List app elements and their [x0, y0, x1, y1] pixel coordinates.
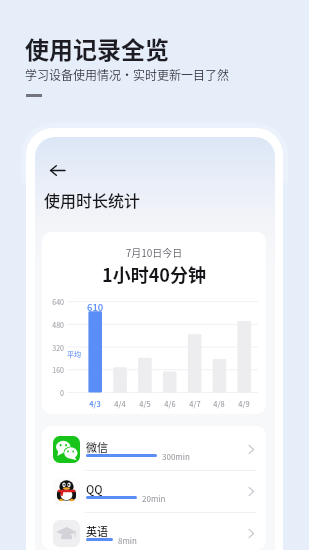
staticText: 英语 [86, 523, 108, 539]
staticText: 20min [142, 493, 166, 505]
staticText: 320 [42, 343, 64, 353]
staticText: 微信 [86, 439, 108, 455]
button[interactable]: QQ [42, 471, 266, 513]
staticText: 使用记录全览 [25, 31, 169, 66]
button[interactable]: Back [45, 158, 69, 182]
staticText: 4/7 [182, 398, 208, 409]
staticText: 8min [118, 535, 137, 547]
staticText: 4/3 [82, 398, 108, 409]
staticText: QQ [86, 481, 103, 497]
staticText: 610 [87, 300, 104, 314]
staticText: 平均 [67, 349, 81, 359]
staticText: 7月10日今日 [42, 245, 266, 259]
staticText: 4/9 [231, 398, 257, 409]
staticText: 4/8 [206, 398, 232, 409]
staticText: 640 [42, 297, 64, 307]
staticText: 160 [42, 365, 64, 375]
button[interactable]: 英语 [42, 513, 266, 550]
staticText: 4/5 [132, 398, 158, 409]
staticText: 300min [162, 451, 190, 463]
staticText: 4/6 [157, 398, 183, 409]
button[interactable]: 微信 [42, 429, 266, 471]
staticText: 学习设备使用情况·实时更新一目了然 [25, 66, 230, 83]
staticText: 使用时长统计 [44, 188, 141, 211]
staticText: 0 [42, 388, 64, 398]
staticText: 4/4 [107, 398, 133, 409]
staticText: 1小时40分钟 [42, 261, 266, 287]
staticText: 480 [42, 320, 64, 330]
